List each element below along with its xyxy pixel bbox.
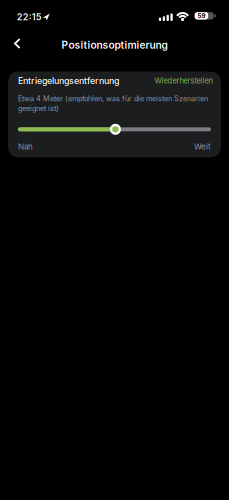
staticText: Wiederherstellen	[154, 76, 212, 85]
staticText: Nah	[18, 142, 33, 151]
staticText: 59	[197, 12, 205, 20]
staticText: Positionsoptimierung	[61, 39, 167, 51]
staticText: Etwa 4 Meter (empfohlen, was für die mei…	[18, 94, 208, 103]
staticText: geeignet ist)	[18, 104, 59, 113]
button[interactable]: Wiederherstellen	[153, 76, 211, 85]
staticText: 22:15	[17, 11, 42, 23]
staticText: Weit	[194, 142, 211, 151]
staticText: Entriegelungsentfernung	[18, 75, 119, 86]
button[interactable]	[0, 31, 20, 59]
button[interactable]	[18, 123, 211, 135]
